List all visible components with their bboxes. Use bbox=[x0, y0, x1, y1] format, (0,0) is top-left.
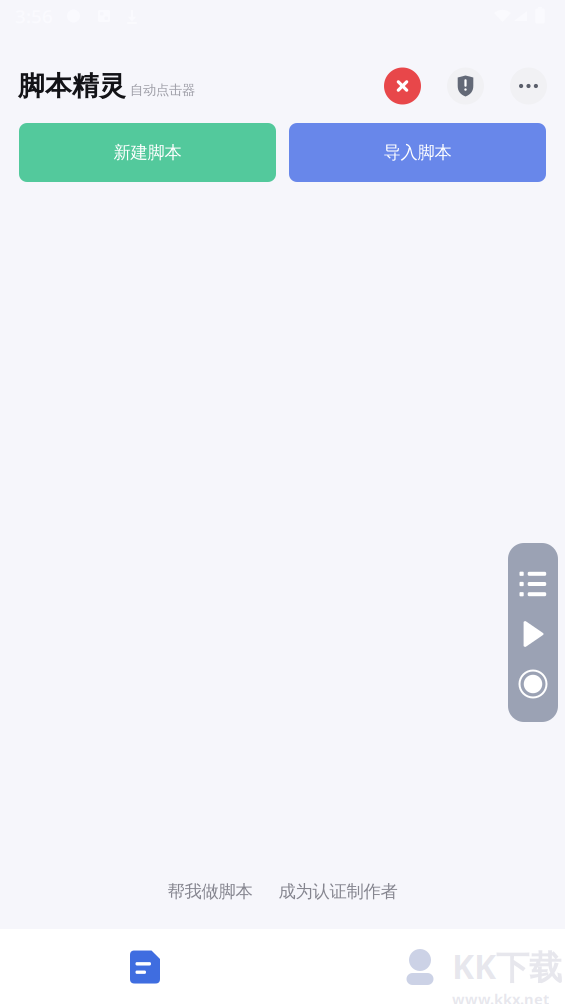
staticText: 脚本精灵 bbox=[18, 70, 126, 102]
staticText: 成为认证制作者 bbox=[278, 881, 397, 902]
staticText: www.kkx.net bbox=[452, 989, 549, 1004]
button[interactable]: 运行 bbox=[508, 609, 558, 659]
staticText: 导入脚本 bbox=[383, 142, 451, 163]
button[interactable]: 关闭 bbox=[384, 67, 421, 104]
staticText: KK下载 bbox=[452, 944, 562, 988]
button[interactable]: 成为认证制作者 bbox=[278, 881, 397, 902]
button[interactable]: 脚本列表 bbox=[508, 559, 558, 609]
button[interactable]: 新建脚本 bbox=[19, 123, 276, 182]
button[interactable]: 安全 bbox=[447, 67, 484, 104]
button[interactable]: 帮我做脚本 bbox=[167, 881, 252, 902]
button[interactable]: 更多 bbox=[510, 67, 547, 104]
button[interactable]: 导入脚本 bbox=[289, 123, 546, 182]
button[interactable]: 我的 bbox=[385, 939, 455, 995]
staticText: 帮我做脚本 bbox=[167, 881, 252, 902]
staticText: 自动点击器 bbox=[130, 82, 195, 98]
button[interactable]: 脚本 bbox=[110, 939, 180, 995]
button[interactable]: 录制 bbox=[508, 659, 558, 709]
staticText: 新建脚本 bbox=[113, 142, 181, 163]
